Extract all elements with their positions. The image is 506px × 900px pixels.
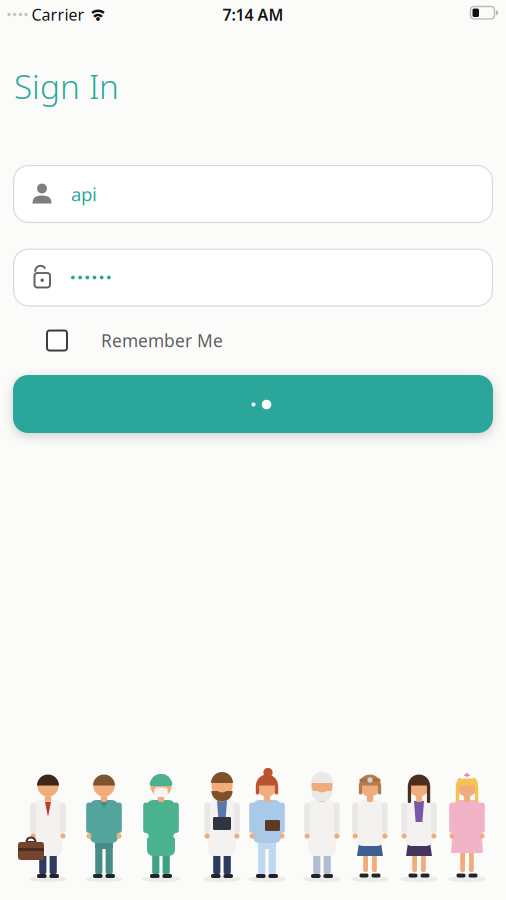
staticText: Remember Me: [101, 329, 223, 352]
staticText: api: [71, 182, 97, 206]
button[interactable]: Sign In: [13, 375, 493, 433]
staticText: 7:14 AM: [222, 4, 283, 25]
button[interactable]: Password: [13, 248, 493, 306]
staticText: Carrier: [31, 4, 84, 25]
button[interactable]: Username: [13, 165, 493, 223]
staticText: Sign In: [14, 64, 119, 108]
button[interactable]: Remember Me: [0, 329, 506, 352]
